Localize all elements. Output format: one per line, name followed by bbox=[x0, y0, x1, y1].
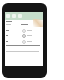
button[interactable]: Menu bbox=[6, 14, 10, 18]
button[interactable]: More bbox=[18, 14, 22, 18]
button[interactable]: Search bbox=[12, 14, 16, 18]
button[interactable] bbox=[22, 33, 37, 38]
button[interactable] bbox=[22, 39, 37, 44]
button[interactable] bbox=[22, 28, 37, 33]
